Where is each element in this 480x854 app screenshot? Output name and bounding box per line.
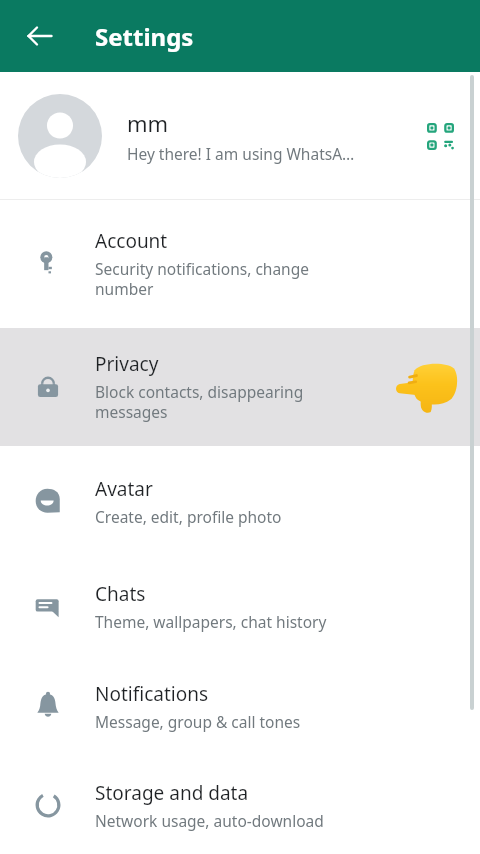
staticText: Message, group & call tones bbox=[95, 711, 301, 732]
staticText: Settings bbox=[95, 20, 194, 53]
staticText: mm bbox=[127, 108, 169, 138]
staticText: Account bbox=[95, 228, 168, 254]
button[interactable]: Notifications bbox=[0, 656, 480, 756]
button[interactable]: Privacy bbox=[0, 328, 480, 446]
staticText: Storage and data bbox=[95, 780, 249, 806]
staticText: Theme, wallpapers, chat history bbox=[95, 611, 327, 632]
staticText: Security notifications, change number bbox=[95, 258, 309, 300]
staticText: Hey there! I am using WhatsA… bbox=[127, 143, 355, 164]
button[interactable]: Chats bbox=[0, 556, 480, 656]
staticText: Create, edit, profile photo bbox=[95, 506, 282, 527]
staticText: Block contacts, disappearing messages bbox=[95, 381, 304, 423]
staticText: Chats bbox=[95, 581, 146, 607]
button[interactable]: Account bbox=[0, 200, 480, 328]
button[interactable]: QR code bbox=[418, 114, 462, 158]
button[interactable]: Storage and data bbox=[0, 756, 480, 854]
staticText: Notifications bbox=[95, 681, 209, 707]
button[interactable]: Avatar bbox=[0, 446, 480, 556]
staticText: Network usage, auto-download bbox=[95, 810, 324, 831]
button[interactable]: mm bbox=[0, 72, 480, 199]
button[interactable]: Back bbox=[16, 12, 64, 60]
staticText: Privacy bbox=[95, 351, 159, 377]
staticText: Avatar bbox=[95, 476, 153, 502]
